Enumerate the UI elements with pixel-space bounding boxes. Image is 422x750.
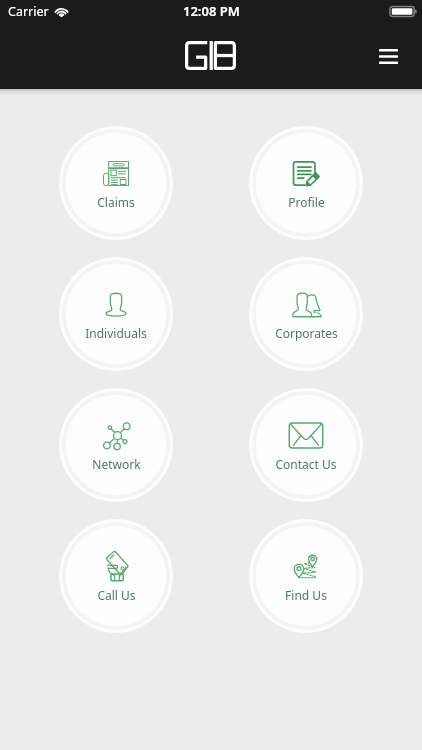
button[interactable]: Call Us (59, 519, 173, 633)
button[interactable]: Menu (366, 34, 410, 78)
staticText: Contact Us (275, 456, 337, 472)
staticText: Call Us (97, 587, 136, 603)
staticText: Find Us (285, 587, 327, 603)
staticText: 12:08 PM (183, 2, 240, 20)
staticText: Individuals (85, 325, 147, 341)
staticText: Carrier (8, 3, 49, 20)
button[interactable]: Corporates (249, 257, 363, 371)
button[interactable]: Contact Us (249, 388, 363, 502)
staticText: Claims (97, 194, 135, 210)
staticText: Profile (288, 194, 325, 210)
button[interactable]: Find Us (249, 519, 363, 633)
staticText: Corporates (275, 325, 338, 341)
staticText: Network (92, 456, 141, 472)
button[interactable]: Profile (249, 126, 363, 240)
button[interactable]: Network (59, 388, 173, 502)
button[interactable]: Individuals (59, 257, 173, 371)
button[interactable]: Claims (59, 126, 173, 240)
